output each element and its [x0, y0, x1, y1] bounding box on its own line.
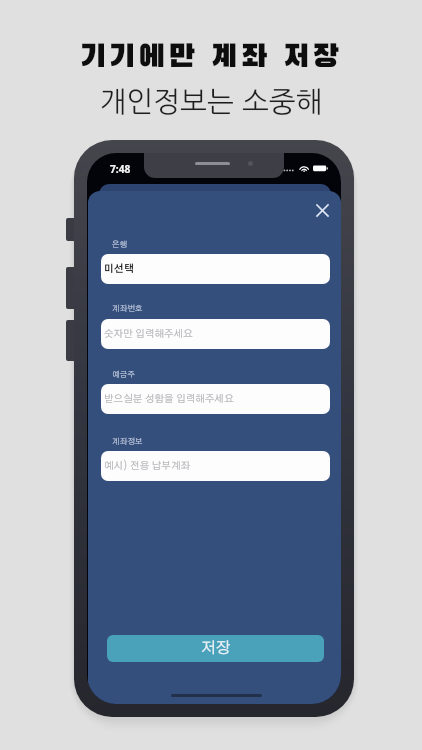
- staticText: 예금주: [112, 371, 136, 379]
- staticText: 계좌번호: [112, 305, 143, 313]
- staticText: 예시) 전용 납부계좌: [104, 461, 191, 471]
- staticText: 받으실분 성함을 입력해주세요: [104, 394, 234, 404]
- button[interactable]: 받으실분 성함을 입력해주세요: [101, 384, 330, 414]
- button[interactable]: 미선택: [101, 254, 330, 284]
- button[interactable]: Close: [308, 196, 336, 224]
- staticText: 미선택: [104, 264, 134, 274]
- staticText: 저장: [201, 641, 231, 657]
- staticText: 개인정보는 소중해: [0, 88, 422, 117]
- staticText: 은행: [112, 241, 128, 249]
- staticText: 계좌정보: [112, 438, 143, 446]
- staticText: 기기에만 계좌 저장: [0, 43, 422, 74]
- staticText: 7:48: [110, 162, 131, 176]
- button[interactable]: 숫자만 입력해주세요: [101, 319, 330, 349]
- staticText: 숫자만 입력해주세요: [104, 329, 193, 339]
- button[interactable]: 예시) 전용 납부계좌: [101, 451, 330, 481]
- button[interactable]: 저장: [107, 635, 324, 662]
